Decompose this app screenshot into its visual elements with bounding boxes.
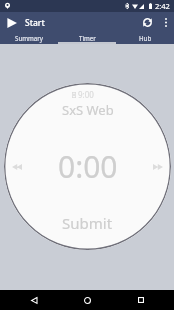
staticText: 2:42 bbox=[155, 1, 170, 11]
button[interactable]: Sync bbox=[136, 12, 158, 32]
staticText: Timer bbox=[79, 34, 96, 42]
button[interactable]: Back bbox=[23, 290, 44, 310]
button[interactable]: Fast forward bbox=[148, 157, 168, 177]
button[interactable]: Home bbox=[77, 290, 98, 310]
button[interactable]: Play bbox=[0, 13, 24, 33]
button[interactable]: Rewind bbox=[7, 157, 27, 177]
button[interactable]: Summary bbox=[0, 32, 58, 44]
staticText: 9:00 bbox=[78, 89, 94, 100]
button[interactable]: Timer bbox=[58, 32, 116, 44]
button[interactable]: Submit bbox=[62, 213, 113, 233]
button[interactable]: 9:00 bbox=[4, 83, 171, 250]
staticText: Start bbox=[25, 17, 45, 29]
staticText: Hub bbox=[139, 34, 152, 42]
staticText: 0:00 bbox=[58, 146, 118, 187]
staticText: Summary bbox=[15, 34, 43, 42]
staticText: SxS Web bbox=[62, 101, 114, 119]
button[interactable]: Hub bbox=[116, 32, 174, 44]
button[interactable]: More options bbox=[158, 12, 174, 32]
button[interactable]: Recent apps bbox=[130, 290, 151, 310]
